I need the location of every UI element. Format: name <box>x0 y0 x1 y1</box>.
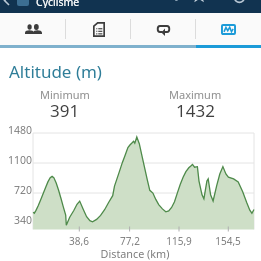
staticText: 1100 <box>2 153 32 167</box>
staticText: 154,5 <box>212 234 244 248</box>
staticText: 115,9 <box>163 234 195 248</box>
staticText: Cyclisme <box>36 0 80 8</box>
button[interactable]: Athletes <box>0 13 66 45</box>
staticText: Minimum <box>40 87 90 102</box>
button[interactable]: Favorite <box>217 0 239 13</box>
button[interactable]: Charts <box>196 13 261 45</box>
staticText: 77,2 <box>114 234 146 248</box>
button[interactable] <box>34 0 195 13</box>
staticText: 1432 <box>176 99 215 122</box>
staticText: Distance (km) <box>75 246 195 261</box>
staticText: 1480 <box>2 123 32 137</box>
button[interactable]: More options <box>195 0 217 13</box>
staticText: 340 <box>2 213 32 227</box>
button[interactable]: Navigate up <box>0 0 34 13</box>
staticText: Maximum <box>169 87 222 102</box>
staticText: 391 <box>50 99 80 122</box>
button[interactable]: Details <box>66 13 131 45</box>
button[interactable]: Refresh <box>239 0 261 13</box>
staticText: 720 <box>2 183 32 197</box>
staticText: 38,6 <box>63 234 95 248</box>
button[interactable]: Laps <box>131 13 196 45</box>
staticText: Altitude (m) <box>9 60 102 83</box>
